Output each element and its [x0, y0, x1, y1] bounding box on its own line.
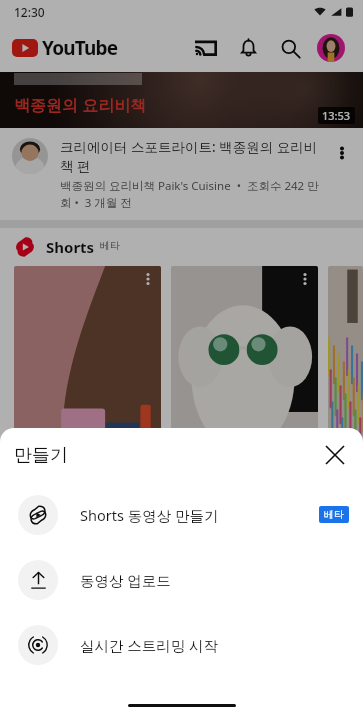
button[interactable]: YouTube [12, 31, 118, 65]
button[interactable]: Account [311, 28, 351, 68]
button[interactable]: More options [171, 266, 318, 444]
button[interactable]: Notifications [227, 27, 269, 69]
button[interactable]: Shorts 동영상 만들기 [0, 482, 363, 547]
staticText: 12:30 [14, 4, 45, 20]
staticText: 13:53 [322, 108, 351, 123]
staticText: 베타 [324, 508, 344, 521]
staticText: 백종원의 요리비책 [14, 94, 147, 116]
staticText: 백종원의 요리비책 Paik's Cuisine • 조회수 242 만회 • … [60, 178, 327, 210]
button[interactable] [328, 266, 363, 444]
staticText: 실시간 스트리밍 시작 [80, 635, 219, 655]
staticText: Shorts [46, 237, 95, 257]
button[interactable]: Cast [185, 27, 227, 69]
staticText: 크리에이터 스포트라이트: 백종원의 요리비책 편 [60, 138, 327, 175]
button[interactable]: 크리에이터 스포트라이트: 백종원의 요리비책 편 [0, 128, 363, 220]
button[interactable]: Search [269, 27, 311, 69]
button[interactable]: More options [135, 266, 161, 292]
button[interactable]: 실시간 스트리밍 시작 [0, 612, 363, 677]
staticText: 베타 [100, 239, 120, 252]
button[interactable]: More options [14, 266, 161, 444]
button[interactable]: Shorts [0, 228, 363, 266]
button[interactable]: Close [315, 435, 355, 475]
staticText: YouTube [42, 35, 118, 61]
button[interactable]: 동영상 업로드 [0, 547, 363, 612]
staticText: Shorts 동영상 만들기 [80, 505, 219, 525]
staticText: 만들기 [14, 444, 68, 467]
button[interactable]: More options [327, 138, 357, 168]
button[interactable]: More options [292, 266, 318, 292]
staticText: 동영상 업로드 [80, 570, 171, 590]
